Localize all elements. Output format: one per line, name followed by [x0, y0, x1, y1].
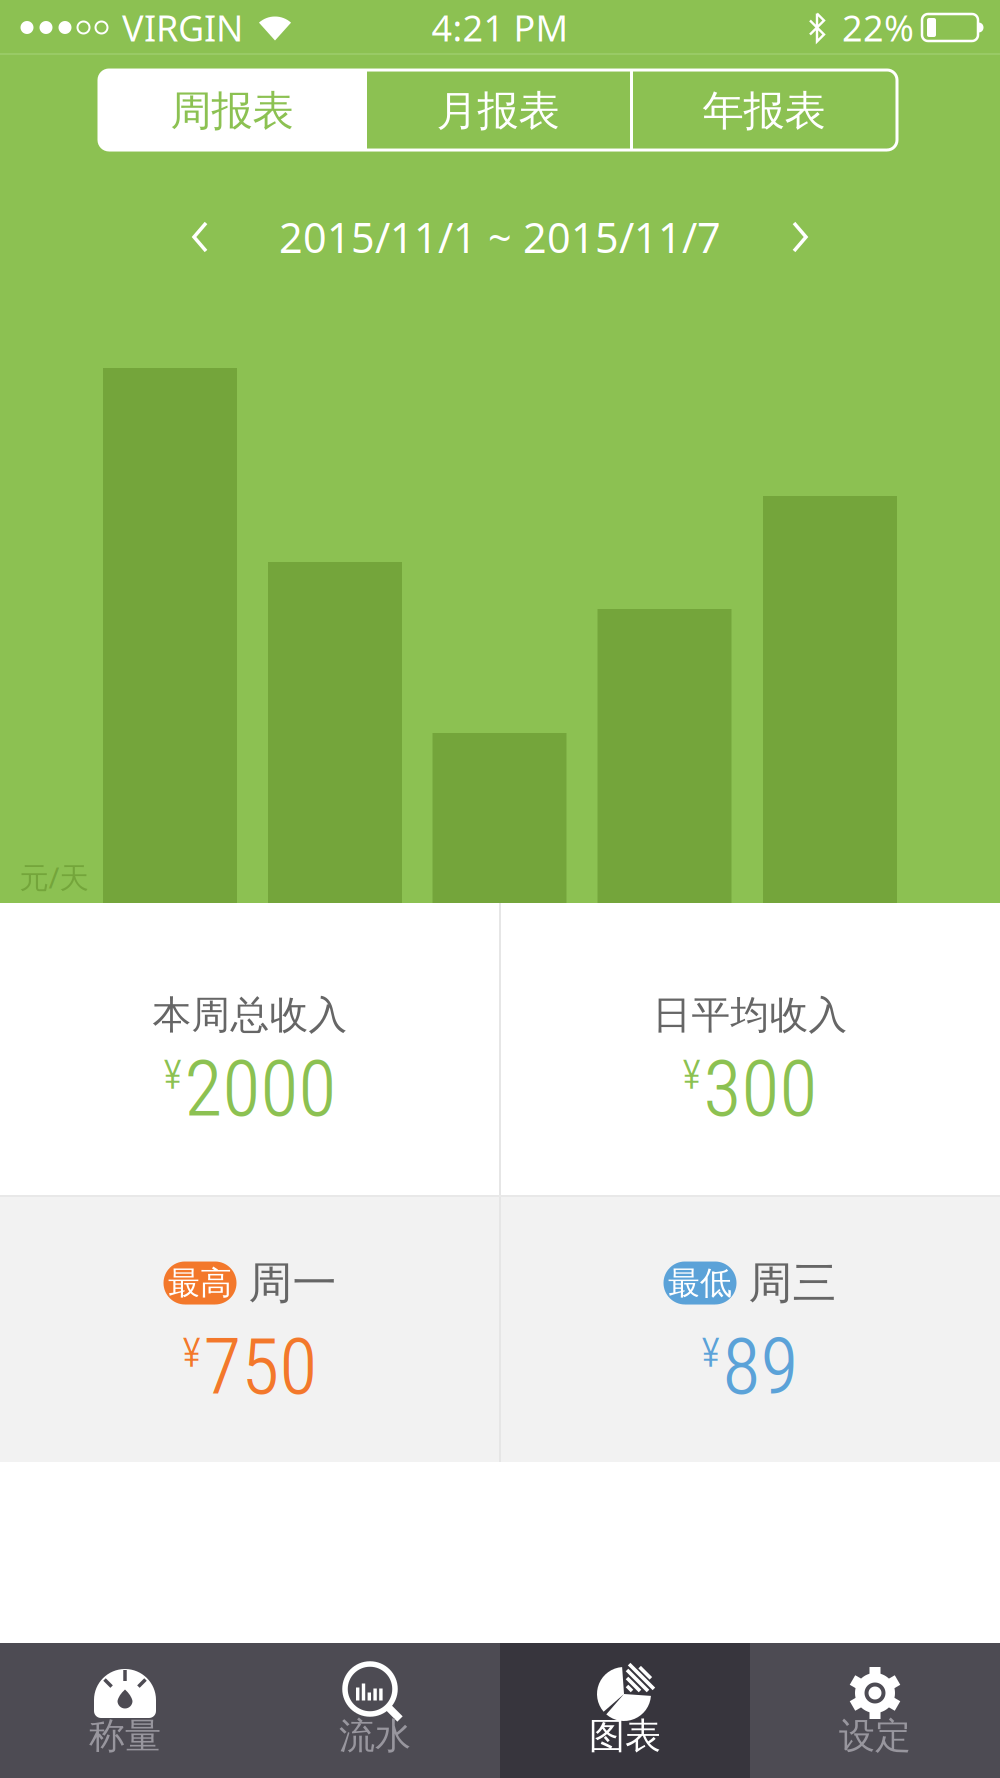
button[interactable]: 月报表 — [365, 71, 631, 151]
staticText: 图表 — [589, 1714, 661, 1758]
staticText: 本周总收入 — [152, 991, 347, 1039]
staticText: 月报表 — [436, 86, 559, 136]
staticText: 2000 — [184, 1044, 336, 1134]
staticText: 89 — [722, 1322, 798, 1412]
button[interactable]: Next week — [772, 209, 828, 265]
staticText: 设定 — [839, 1714, 911, 1758]
staticText: 周报表 — [170, 86, 293, 136]
staticText: 流水 — [339, 1714, 411, 1758]
staticText: 周一 — [248, 1256, 336, 1310]
staticText: 年报表 — [702, 86, 825, 136]
button[interactable]: 周报表 — [99, 71, 365, 151]
staticText: 4:21 PM — [431, 4, 568, 51]
staticText: 22% — [842, 4, 914, 51]
staticText: 最高 — [168, 1263, 232, 1303]
staticText: 称量 — [89, 1714, 161, 1758]
staticText: 日平均收入 — [652, 991, 847, 1039]
staticText: 周三 — [748, 1256, 836, 1310]
staticText: ¥ — [701, 1330, 719, 1377]
button[interactable]: 图表 — [500, 1643, 750, 1778]
staticText: 2015/11/1 ~ 2015/11/7 — [279, 210, 721, 264]
staticText: VIRGIN — [122, 4, 243, 51]
staticText: ¥ — [682, 1052, 700, 1099]
button[interactable]: 年报表 — [631, 71, 897, 151]
staticText: 最低 — [668, 1263, 732, 1303]
staticText: 元/天 — [19, 857, 88, 896]
staticText: ¥ — [163, 1052, 181, 1099]
button[interactable]: 称量 — [0, 1643, 250, 1778]
button[interactable]: 流水 — [250, 1643, 500, 1778]
button[interactable]: 设定 — [750, 1643, 1000, 1778]
staticText: 300 — [703, 1044, 817, 1134]
button[interactable]: Previous week — [172, 209, 228, 265]
staticText: ¥ — [182, 1330, 200, 1377]
staticText: 750 — [203, 1322, 317, 1412]
